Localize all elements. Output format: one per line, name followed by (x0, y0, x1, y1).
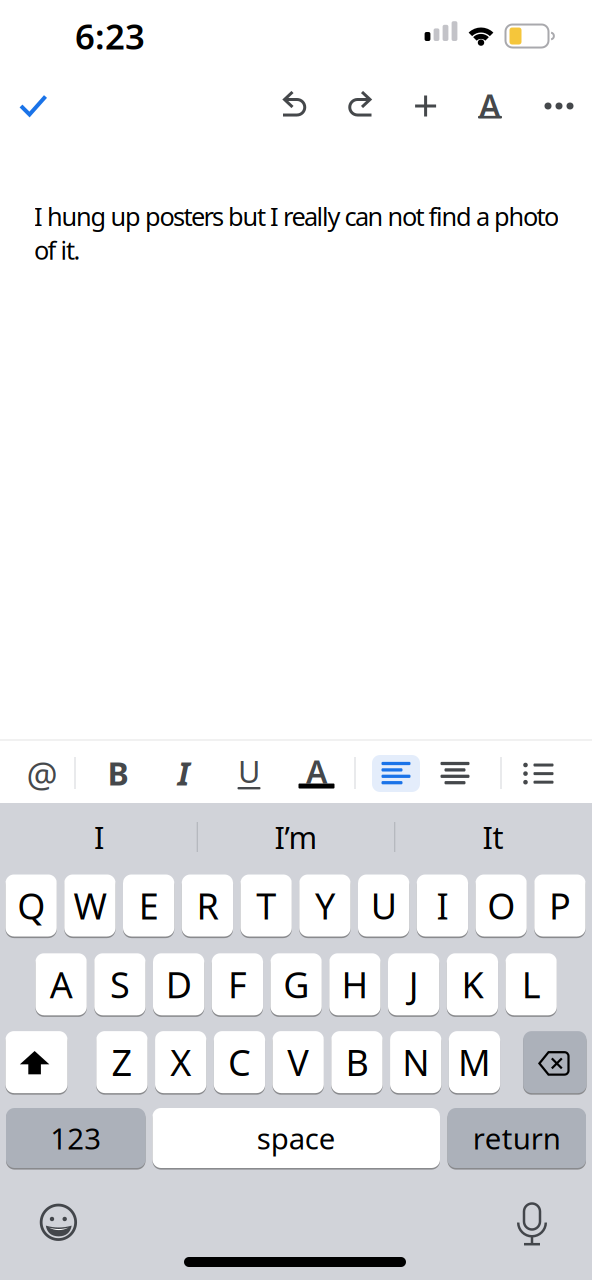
staticText: X (170, 1038, 191, 1086)
staticText: Y (315, 882, 335, 929)
staticText: return (473, 1118, 561, 1157)
staticText: I hung up posters but I really can not f… (34, 199, 559, 267)
staticText: S (110, 960, 130, 1008)
staticText: 123 (50, 1118, 101, 1157)
staticText: space (257, 1118, 336, 1157)
staticText: C (228, 1038, 251, 1086)
staticText: @ (26, 751, 57, 797)
staticText: L (522, 960, 541, 1008)
staticText: I (94, 817, 104, 857)
staticText: T (256, 882, 276, 929)
staticText: V (287, 1038, 309, 1086)
staticText: G (283, 960, 309, 1008)
staticText: D (166, 960, 192, 1008)
staticText: I’m (274, 817, 317, 857)
staticText: B (345, 1038, 368, 1086)
staticText: K (461, 960, 483, 1008)
staticText: R (196, 882, 218, 929)
staticText: U (371, 882, 397, 929)
staticText: P (549, 882, 571, 929)
staticText: I (177, 752, 189, 794)
staticText: N (402, 1038, 429, 1086)
staticText: F (228, 960, 247, 1008)
staticText: J (409, 960, 419, 1008)
staticText: A (50, 960, 73, 1008)
staticText: O (487, 882, 515, 929)
staticText: E (139, 882, 159, 929)
staticText: It (482, 817, 503, 857)
staticText: Q (17, 882, 45, 929)
staticText: M (458, 1038, 491, 1086)
staticText: B (107, 752, 128, 794)
staticText: A (306, 750, 328, 792)
staticText: H (341, 960, 368, 1008)
staticText: Z (111, 1038, 132, 1086)
staticText: W (73, 882, 106, 929)
staticText: I (436, 882, 448, 929)
staticText: 6:23 (75, 13, 145, 59)
staticText: U (238, 751, 260, 791)
staticText: A (479, 84, 501, 126)
